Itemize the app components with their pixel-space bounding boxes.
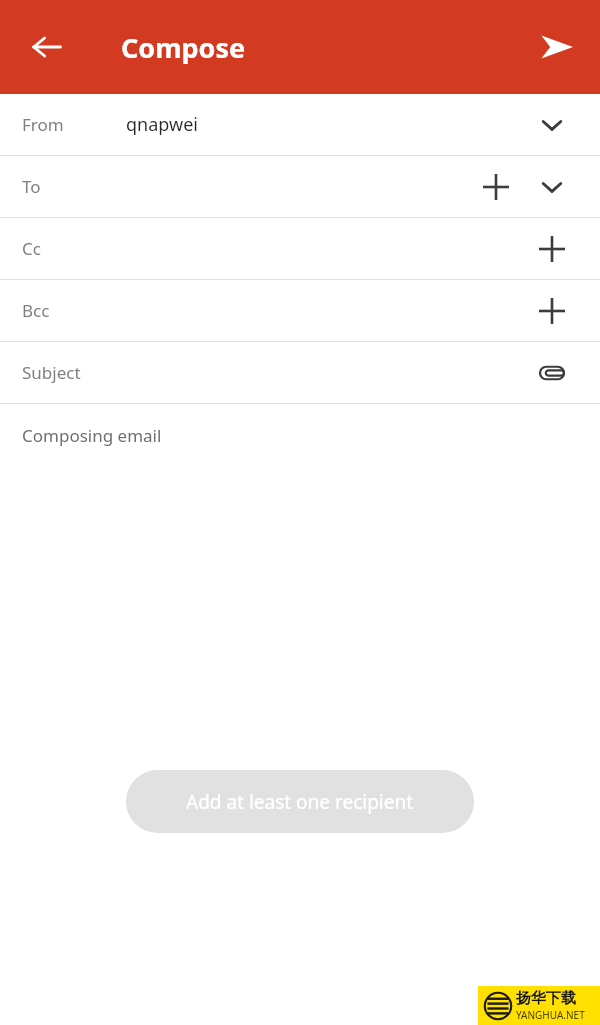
staticText: Add at least one recipient (186, 789, 414, 815)
button[interactable]: To (0, 156, 600, 217)
staticText: Subject (22, 361, 81, 384)
staticText: qnapwei (126, 112, 198, 137)
staticText: To (22, 175, 41, 198)
button[interactable]: Add recipient (526, 223, 578, 275)
button[interactable]: Bcc (0, 280, 600, 341)
button[interactable]: From (0, 94, 600, 155)
button[interactable]: Add recipient (526, 285, 578, 337)
staticText: Bcc (22, 299, 50, 322)
button[interactable]: Attach file (526, 347, 578, 399)
staticText: Compose (121, 29, 246, 66)
button[interactable]: Back (15, 15, 79, 79)
button[interactable]: Subject (0, 342, 600, 403)
staticText: Cc (22, 237, 41, 260)
staticText: YANGHUA.NET (516, 1008, 585, 1022)
staticText: Composing email (22, 424, 162, 447)
button[interactable]: Expand (526, 161, 578, 213)
button[interactable]: Add at least one recipient (126, 770, 474, 833)
button[interactable]: Expand (526, 99, 578, 151)
button[interactable]: Send (526, 16, 588, 78)
button[interactable]: Composing email (0, 404, 600, 466)
button[interactable]: Add recipient (470, 161, 522, 213)
staticText: 扬华下载 (516, 989, 576, 1008)
staticText: From (22, 113, 64, 136)
button[interactable]: Cc (0, 218, 600, 279)
